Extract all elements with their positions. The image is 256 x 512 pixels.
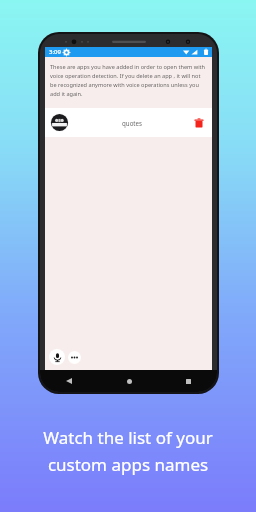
button[interactable]: Recents bbox=[181, 374, 195, 388]
staticText: 3:09 bbox=[49, 48, 61, 56]
staticText: These are apps you have added in order t… bbox=[50, 63, 207, 98]
staticText: Watch the list of your bbox=[0, 426, 256, 449]
button[interactable]: Voice input bbox=[49, 349, 65, 365]
button[interactable]: Back bbox=[62, 374, 76, 388]
button[interactable]: quotes bbox=[45, 108, 212, 137]
button[interactable]: Home bbox=[122, 374, 136, 388]
staticText: quotes bbox=[122, 119, 143, 127]
staticText: custom apps names bbox=[0, 453, 256, 476]
button[interactable]: Delete bbox=[191, 115, 207, 131]
button[interactable]: More options bbox=[68, 351, 81, 364]
